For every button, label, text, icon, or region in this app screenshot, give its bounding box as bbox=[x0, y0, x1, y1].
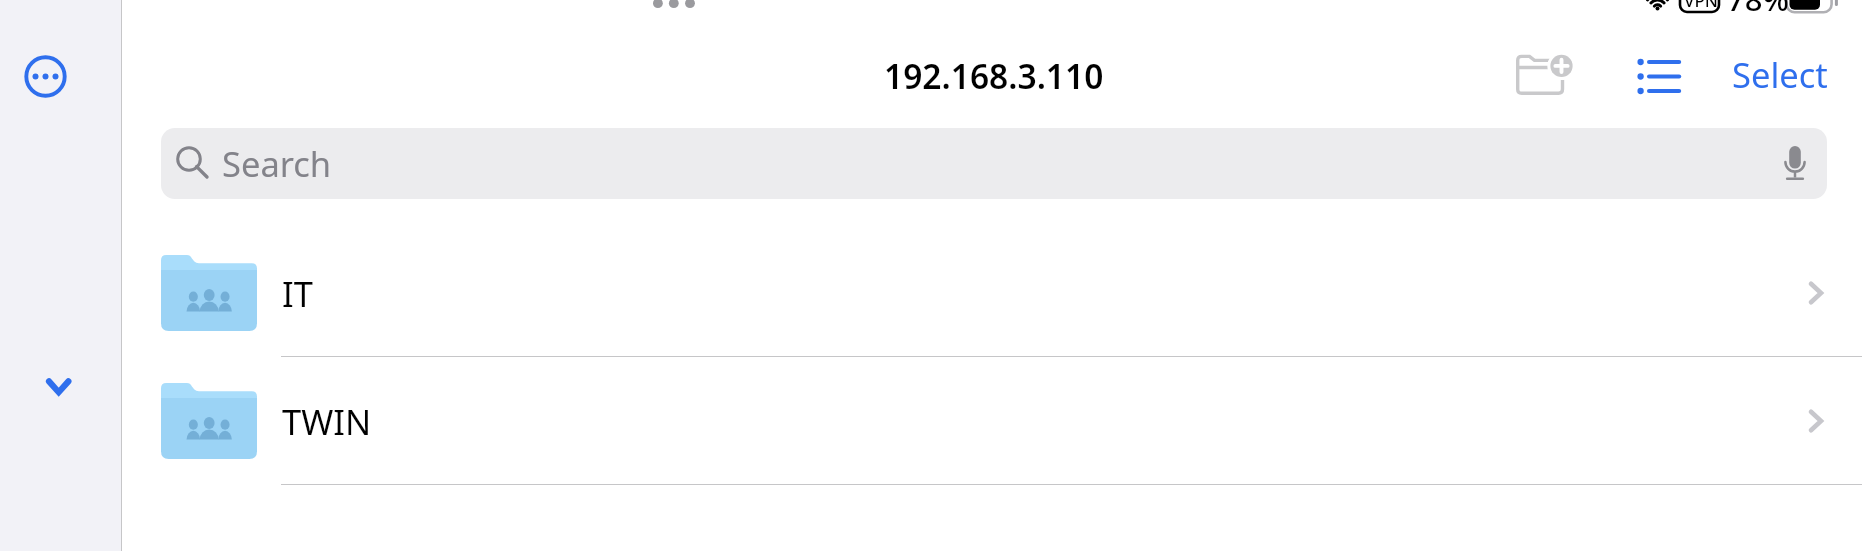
button[interactable]: Voice search bbox=[1774, 137, 1816, 190]
staticText: VPN bbox=[1684, 0, 1719, 12]
button[interactable]: Search bbox=[161, 128, 1827, 199]
button[interactable]: New Folder bbox=[1516, 47, 1573, 102]
staticText: Search bbox=[222, 140, 332, 187]
staticText: 78% bbox=[1727, 0, 1789, 20]
button[interactable]: More bbox=[18, 49, 73, 104]
button[interactable]: TWIN bbox=[122, 357, 1862, 485]
button[interactable]: List view bbox=[1635, 56, 1683, 96]
staticText: 192.168.3.110 bbox=[884, 53, 1104, 99]
staticText: IT bbox=[282, 270, 313, 317]
staticText: Select bbox=[1732, 51, 1828, 98]
staticText: TWIN bbox=[282, 398, 372, 445]
button[interactable]: Collapse section bbox=[34, 366, 84, 406]
button[interactable]: IT bbox=[122, 229, 1862, 357]
button[interactable]: Select bbox=[1722, 44, 1838, 104]
